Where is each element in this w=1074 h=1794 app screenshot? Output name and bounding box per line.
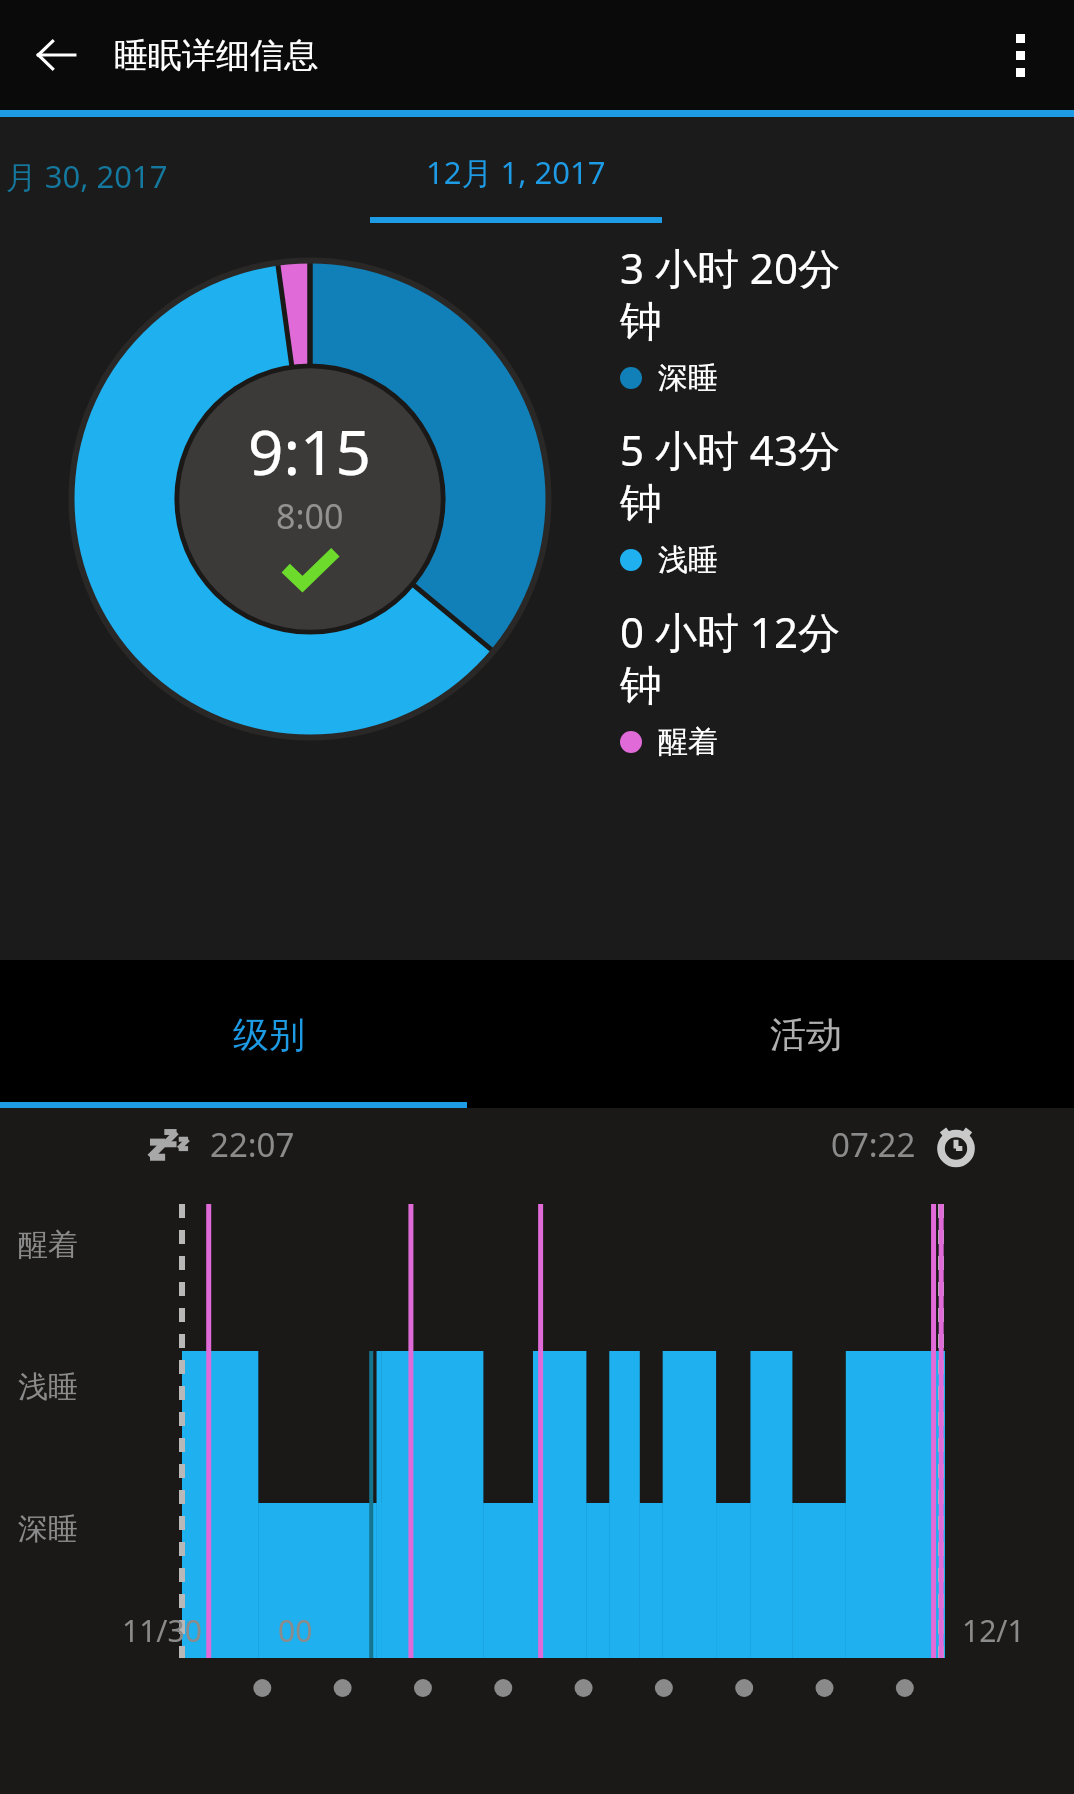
staticText: 睡眠详细信息 [114,34,318,77]
staticText: 07:22 [831,1122,916,1167]
staticText: 深睡 [658,359,718,397]
staticText: 醒着 [658,723,718,761]
staticText: 8:00 [276,493,344,539]
staticText: 钟 [620,660,662,713]
staticText: 醒着 [18,1226,78,1264]
staticText: 00 [278,1610,313,1651]
staticText: 12/1 [962,1610,1025,1651]
staticText: 22:07 [210,1122,295,1167]
button[interactable]: Back [20,19,92,91]
staticText: 钟 [620,296,662,349]
staticText: 0 小时 12分 [620,603,840,660]
staticText: 11/30 [122,1610,202,1651]
staticText: 级别 [233,1012,305,1057]
staticText: 浅睡 [18,1368,78,1406]
staticText: 3 小时 20分 [620,239,840,296]
staticText: 活动 [770,1012,842,1057]
staticText: 深睡 [18,1510,78,1548]
staticText: 浅睡 [658,541,718,579]
button[interactable]: More options [980,15,1060,95]
staticText: 12月 1, 2017 [426,151,606,193]
staticText: 钟 [620,478,662,531]
staticText: 9:15 [248,409,372,493]
button[interactable]: 级别 [0,960,537,1108]
button[interactable]: 活动 [537,960,1074,1108]
staticText: 5 小时 43分 [620,421,840,478]
staticText: 1月 30, 2017 [0,155,168,197]
